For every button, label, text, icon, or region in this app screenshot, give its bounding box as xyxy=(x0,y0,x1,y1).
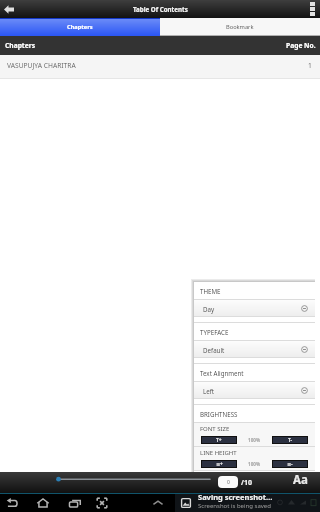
button[interactable]: Back xyxy=(0,494,24,512)
button[interactable]: Text settings xyxy=(287,472,313,493)
staticText: /10 xyxy=(241,478,252,488)
button[interactable]: T+ xyxy=(202,437,236,443)
button[interactable]: Recent apps xyxy=(63,494,87,512)
staticText: BRIGHTNESS xyxy=(200,410,238,418)
button[interactable]: Day xyxy=(194,300,315,317)
staticText: 100% xyxy=(248,437,261,443)
staticText: Page No. xyxy=(286,41,316,50)
button[interactable]: VASUPUJYA CHARITRA xyxy=(0,55,320,79)
button[interactable]: Home xyxy=(31,494,55,512)
button[interactable]: ≡+ xyxy=(202,461,236,467)
staticText: LINE HEIGHT xyxy=(200,449,237,457)
staticText: Day xyxy=(203,305,215,313)
button[interactable]: Expand notifications xyxy=(146,494,170,512)
staticText: Saving screenshot… xyxy=(198,492,273,502)
staticText: Bookmark xyxy=(226,23,254,31)
staticText: VASUPUJYA CHARITRA xyxy=(7,61,76,70)
staticText: THEME xyxy=(200,287,221,295)
staticText: T- xyxy=(288,437,293,443)
staticText: Table Of Contents xyxy=(133,5,188,13)
button[interactable]: Bookmark xyxy=(160,18,320,36)
staticText: T+ xyxy=(216,437,222,443)
staticText: FONT SIZE xyxy=(200,425,230,433)
staticText: 0 xyxy=(227,479,230,486)
staticText: Text Alignment xyxy=(200,369,244,377)
staticText: Chapters xyxy=(5,41,36,50)
button[interactable]: Chapters xyxy=(0,18,160,36)
staticText: TYPEFACE xyxy=(200,328,229,336)
staticText: Aa xyxy=(293,472,308,488)
button[interactable]: Default xyxy=(194,341,315,358)
button[interactable]: More options xyxy=(304,0,320,18)
staticText: Screenshot is being saved xyxy=(198,502,271,510)
button[interactable]: Screenshot xyxy=(90,494,114,512)
staticText: 1 xyxy=(308,61,312,70)
button[interactable]: Back xyxy=(0,0,22,18)
button[interactable]: ≡- xyxy=(273,461,307,467)
button[interactable]: 0 xyxy=(218,476,238,488)
staticText: 100% xyxy=(248,461,261,467)
staticText: Left xyxy=(203,387,215,395)
button[interactable]: Left xyxy=(194,382,315,399)
staticText: ≡+ xyxy=(216,461,223,467)
staticText: Default xyxy=(203,346,225,354)
staticText: Chapters xyxy=(67,23,93,31)
staticText: ≡- xyxy=(287,461,293,467)
button[interactable]: T- xyxy=(273,437,307,443)
